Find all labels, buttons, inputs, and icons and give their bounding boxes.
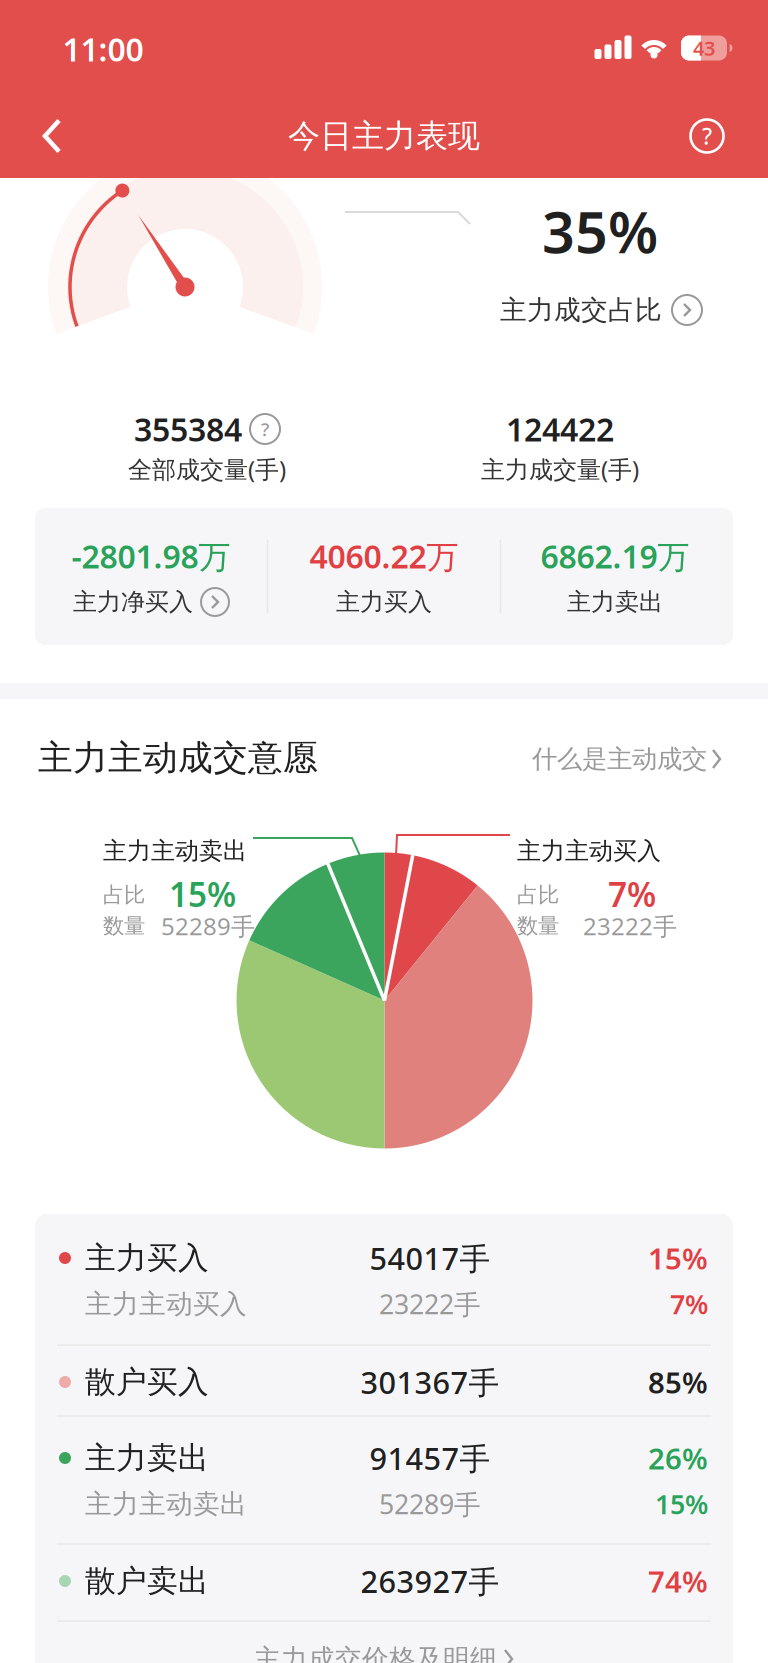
staticText: 什么是主动成交 <box>532 743 707 774</box>
staticText: 35% <box>542 193 658 269</box>
staticText: 52289手 <box>379 1486 481 1522</box>
staticText: 主力主动买入 <box>85 1288 247 1320</box>
button[interactable]: 全部成交量说明 <box>250 414 280 444</box>
staticText: 23222手 <box>583 910 677 942</box>
staticText: 主力成交占比 <box>500 294 662 326</box>
staticText: 主力买入 <box>336 587 432 617</box>
staticText: 54017手 <box>369 1238 490 1278</box>
staticText: 数量 <box>103 913 145 939</box>
staticText: 主力成交价格及明细 <box>254 1643 497 1663</box>
staticText: 主力主动卖出 <box>103 836 247 866</box>
staticText: 124422 <box>506 408 614 450</box>
staticText: 301367手 <box>360 1362 499 1402</box>
staticText: 355384 <box>134 408 242 450</box>
staticText: ? <box>261 417 269 441</box>
staticText: 6862.19万 <box>540 535 689 577</box>
button[interactable]: Back <box>43 118 61 153</box>
button[interactable]: 主力成交价格及明细 <box>254 1643 514 1663</box>
staticText: 数量 <box>517 913 559 939</box>
staticText: 散户卖出 <box>85 1562 209 1600</box>
button[interactable]: Help <box>690 119 723 152</box>
staticText: 散户买入 <box>85 1363 209 1401</box>
staticText: 91457手 <box>369 1438 490 1478</box>
staticText: 主力主动成交意愿 <box>38 737 318 779</box>
staticText: 74% <box>648 1561 708 1600</box>
staticText: 占比 <box>517 882 559 908</box>
staticText: 52289手 <box>161 910 255 942</box>
staticText: 全部成交量(手) <box>128 453 286 485</box>
staticText: 4060.22万 <box>309 535 458 577</box>
staticText: 7% <box>608 872 656 916</box>
staticText: 26% <box>648 1438 708 1477</box>
button[interactable]: 什么是主动成交 <box>532 743 722 774</box>
staticText: 15% <box>648 1238 708 1277</box>
staticText: 主力主动买入 <box>517 836 661 866</box>
staticText: 263927手 <box>360 1561 499 1601</box>
staticText: 15% <box>655 1486 708 1522</box>
button[interactable]: 主力净买入 <box>73 587 229 617</box>
staticText: 11:00 <box>62 28 143 70</box>
staticText: 主力卖出 <box>85 1439 209 1477</box>
staticText: 主力成交量(手) <box>481 453 639 485</box>
staticText: 主力卖出 <box>567 587 663 617</box>
staticText: 43 <box>693 35 715 61</box>
staticText: 7% <box>670 1286 708 1322</box>
staticText: ? <box>702 121 712 151</box>
staticText: 主力主动卖出 <box>85 1488 247 1520</box>
staticText: 23222手 <box>379 1286 481 1322</box>
staticText: 85% <box>648 1362 708 1401</box>
button[interactable]: 主力成交占比 <box>500 294 702 326</box>
staticText: 主力买入 <box>85 1239 209 1277</box>
staticText: 占比 <box>103 882 145 908</box>
staticText: 主力净买入 <box>73 587 193 617</box>
staticText: 15% <box>169 872 236 916</box>
staticText: 今日主力表现 <box>288 116 480 156</box>
staticText: -2801.98万 <box>71 535 230 577</box>
